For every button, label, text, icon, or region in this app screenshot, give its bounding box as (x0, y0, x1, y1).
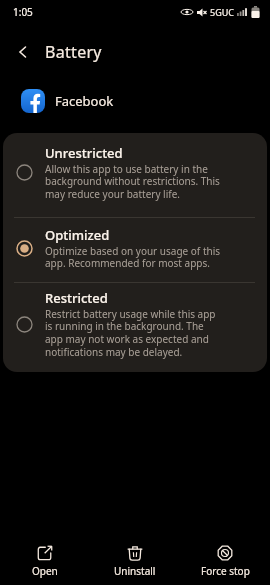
button[interactable]: Open (0, 537, 90, 585)
button[interactable]: Uninstall (90, 537, 180, 585)
staticText: Allow this app to use battery in the bac… (45, 162, 220, 201)
button[interactable]: Unrestricted (3, 133, 267, 217)
staticText: Unrestricted (45, 144, 123, 162)
button[interactable]: Facebook (21, 89, 270, 113)
staticText: Optimized (45, 226, 110, 244)
staticText: 1:05 (13, 5, 33, 19)
staticText: Restricted (45, 289, 108, 307)
staticText: Restrict battery usage while this app is… (45, 307, 216, 359)
staticText: Optimize based on your usage of this app… (45, 244, 221, 270)
button[interactable]: Restricted (3, 283, 267, 372)
staticText: Open (32, 564, 58, 578)
staticText: Battery (45, 41, 102, 63)
staticText: Uninstall (114, 564, 156, 578)
button[interactable]: Optimized (3, 218, 267, 282)
staticText: 5GUC (210, 6, 234, 18)
staticText: Force stop (201, 564, 250, 578)
staticText: Facebook (55, 92, 114, 110)
button[interactable]: Force stop (180, 537, 270, 585)
button[interactable] (9, 38, 37, 66)
